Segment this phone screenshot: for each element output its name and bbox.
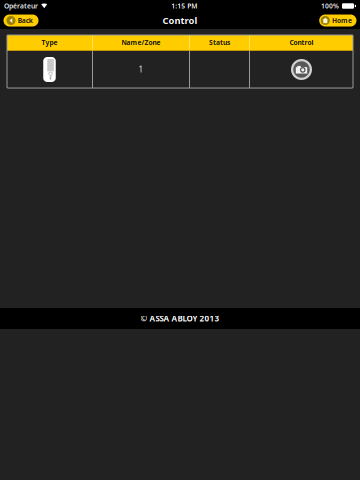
staticText: Type — [41, 38, 57, 47]
staticText: Control — [289, 38, 313, 47]
staticText: Back — [18, 16, 33, 25]
staticText: 1 — [138, 64, 143, 75]
button[interactable]: Back — [3, 14, 38, 26]
staticText: Home — [332, 16, 352, 25]
button[interactable]: Control device — [250, 51, 353, 87]
staticText: 1:15 PM — [171, 2, 197, 10]
staticText: Status — [209, 38, 230, 47]
staticText: © ASSA ABLOY 2013 — [140, 313, 219, 324]
staticText: Control — [162, 14, 197, 27]
staticText: Name/Zone — [121, 38, 160, 47]
staticText: Opérateur — [4, 2, 38, 10]
staticText: 100% — [321, 2, 339, 10]
button[interactable]: Home — [319, 14, 356, 26]
